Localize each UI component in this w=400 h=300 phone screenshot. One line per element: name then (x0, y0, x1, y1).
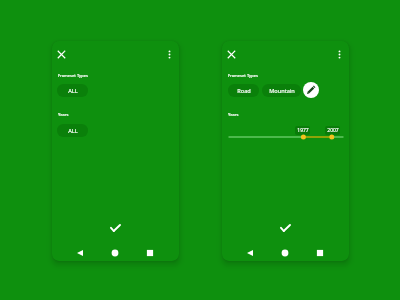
staticText: 2007 (327, 127, 339, 134)
button[interactable]: Mountain (262, 84, 301, 97)
button[interactable]: Apply (104, 217, 126, 239)
button[interactable]: Edit (303, 82, 319, 98)
button[interactable]: More options (163, 48, 176, 61)
staticText: ALL (68, 87, 78, 95)
button[interactable]: Close (55, 48, 68, 61)
button[interactable]: ALL (57, 84, 88, 97)
button[interactable]: Back (241, 244, 259, 261)
button[interactable]: Apply (274, 217, 296, 239)
staticText: Mountain (269, 87, 295, 95)
staticText: Years (228, 112, 239, 117)
button[interactable]: Back (71, 244, 89, 261)
staticText: Road (237, 87, 251, 95)
button[interactable]: Recents (311, 244, 329, 261)
button[interactable]: Close (225, 48, 238, 61)
button[interactable]: Recents (141, 244, 159, 261)
button[interactable]: More options (333, 48, 346, 61)
button[interactable]: Road (228, 84, 259, 97)
button[interactable]: Home (276, 244, 294, 261)
staticText: ALL (68, 127, 78, 135)
staticText: Frameset Types (228, 73, 258, 78)
staticText: Years (58, 112, 69, 117)
button[interactable]: Home (106, 244, 124, 261)
staticText: Frameset Types (58, 73, 88, 78)
staticText: 1977 (297, 127, 309, 134)
button[interactable]: ALL (57, 124, 88, 137)
